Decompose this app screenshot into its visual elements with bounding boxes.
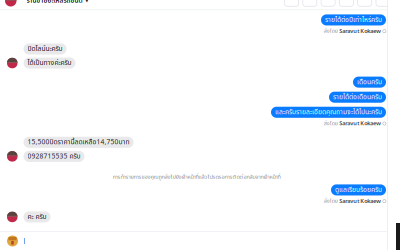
staticText: Saravut Kokaew <box>339 27 381 35</box>
button[interactable]: ได้เป็นทางค่ะครับ <box>7 57 386 69</box>
staticText: เดือนครับ <box>357 77 382 87</box>
staticText: รายได้ต่อเดือนครับ <box>333 92 382 102</box>
staticText: รายได้ต่อปีเท่าไหร่ครับ <box>325 15 382 25</box>
staticText: 0928715535 ครับ <box>27 151 80 161</box>
staticText: การทำรายการของคุณถูกส่งไปยังเจ้าหน้าที่แ… <box>112 173 280 181</box>
button[interactable]: และครับรายละเอียดคุณถามจะได้ไปนะครับ <box>7 107 386 118</box>
button[interactable]: ปิดไลน์นะครับ <box>7 43 386 54</box>
staticText: Saravut Kokaew <box>339 197 381 205</box>
staticText: ได้เป็นทางค่ะครับ <box>27 58 71 68</box>
staticText: ร้านขายอะไหล่รถยนต์ <box>26 0 82 6</box>
staticText: ส่งโดย <box>324 119 338 128</box>
button[interactable]: Conversation info <box>376 0 390 6</box>
button[interactable]: Video call <box>303 0 317 6</box>
button[interactable]: Pin <box>339 0 353 6</box>
button[interactable]: รายได้ต่อเดือนครับ <box>7 92 386 103</box>
button[interactable]: คะ ครับ <box>7 211 386 222</box>
staticText: Saravut Kokaew <box>339 119 381 128</box>
staticText: ▾ <box>85 0 88 4</box>
button[interactable]: Search <box>321 0 335 6</box>
button[interactable]: More <box>358 0 372 6</box>
staticText: และครับรายละเอียดคุณถามจะได้ไปนะครับ <box>275 107 382 117</box>
button[interactable]: ร้านขายอะไหล่รถยนต์ <box>5 0 88 6</box>
button[interactable]: Your profile <box>7 235 18 246</box>
button[interactable]: เดือนครับ <box>7 77 386 88</box>
staticText: ส่งโดย <box>324 27 338 35</box>
staticText: ปิดไลน์นะครับ <box>27 44 62 54</box>
staticText: คะ ครับ <box>27 212 46 222</box>
button[interactable]: 15,500ปิดราคานี้ลดเหลือ14,750บาท <box>7 137 386 148</box>
staticText: ส่งโดย <box>324 197 338 205</box>
staticText: ดูแลเรียบร้อยครับ <box>335 185 382 195</box>
button[interactable]: รายได้ต่อปีเท่าไหร่ครับ <box>7 14 386 25</box>
staticText: 15,500ปิดราคานี้ลดเหลือ14,750บาท <box>27 137 129 147</box>
button[interactable]: 0928715535 ครับ <box>7 151 386 162</box>
button[interactable]: ดูแลเรียบร้อยครับ <box>7 184 386 195</box>
button[interactable]: Audio call <box>284 0 298 6</box>
